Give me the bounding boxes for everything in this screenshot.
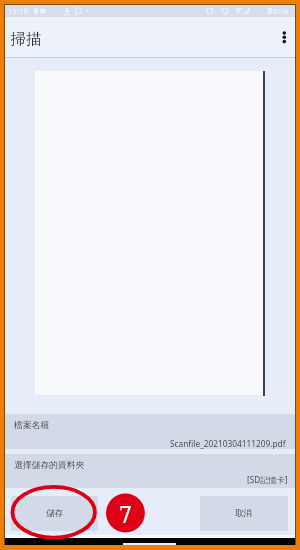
- staticText: 11:18: [8, 6, 28, 17]
- staticText: Scanfile_20210304111209.pdf: [170, 438, 286, 449]
- staticText: 81%: [273, 6, 289, 17]
- staticText: [SD記憶卡]: [247, 474, 288, 485]
- button[interactable]: 儲存: [11, 496, 98, 531]
- button[interactable]: 選擇儲存的資料夾: [5, 454, 295, 488]
- staticText: 掃描: [11, 30, 41, 49]
- button[interactable]: More options: [270, 22, 300, 52]
- staticText: 儲存: [46, 508, 64, 519]
- staticText: 7: [119, 498, 132, 529]
- button[interactable]: 檔案名稱: [5, 414, 295, 449]
- staticText: 選擇儲存的資料夾: [14, 460, 85, 471]
- staticText: 檔案名稱: [14, 420, 50, 431]
- staticText: 取消: [235, 508, 253, 519]
- button[interactable]: 取消: [200, 496, 288, 531]
